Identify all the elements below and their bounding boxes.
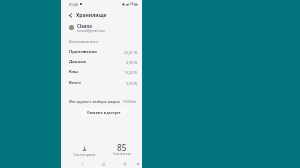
staticText: 23,41 ГБ <box>124 50 138 55</box>
button[interactable]: Данные <box>61 57 142 67</box>
button[interactable]: Back <box>66 11 75 20</box>
staticText: 13,24 ГБ <box>124 70 138 75</box>
button[interactable]: Home <box>99 160 107 168</box>
staticText: Очистить кэш <box>113 152 131 156</box>
staticText: 66 <box>130 2 134 6</box>
staticText: 100 Кбайт <box>123 100 137 104</box>
staticText: 85 <box>117 142 127 151</box>
staticText: Очистить данные <box>73 153 96 157</box>
button[interactable]: Кэш <box>61 67 142 77</box>
staticText: 4,95 ГБ <box>126 60 138 65</box>
staticText: Приложения <box>69 49 97 55</box>
staticText: 3,93 ГБ <box>126 81 138 86</box>
staticText: Cleana <box>77 23 92 29</box>
button[interactable]: Recent apps <box>121 160 129 168</box>
staticText: Кэш <box>69 69 79 75</box>
staticText: Инструмент выбора медиа <box>69 99 120 104</box>
button[interactable]: 85 <box>103 140 140 158</box>
button[interactable]: Back <box>78 160 86 168</box>
button[interactable]: Очистить данные <box>66 140 103 158</box>
staticText: Хранилище <box>76 12 107 19</box>
button[interactable]: More <box>134 160 142 168</box>
button[interactable]: Приложения <box>61 47 142 57</box>
staticText: Использовано места <box>69 40 99 44</box>
button[interactable]: Всего <box>61 78 142 88</box>
staticText: cleana@gmail.com <box>77 29 106 33</box>
staticText: Данные <box>69 59 87 65</box>
staticText: 01:44 <box>69 2 78 7</box>
staticText: Отказать в доступе <box>87 110 121 115</box>
staticText: Всего <box>69 80 81 86</box>
button[interactable]: Cleana <box>61 22 142 33</box>
button[interactable]: Отказать в доступе <box>81 108 127 116</box>
